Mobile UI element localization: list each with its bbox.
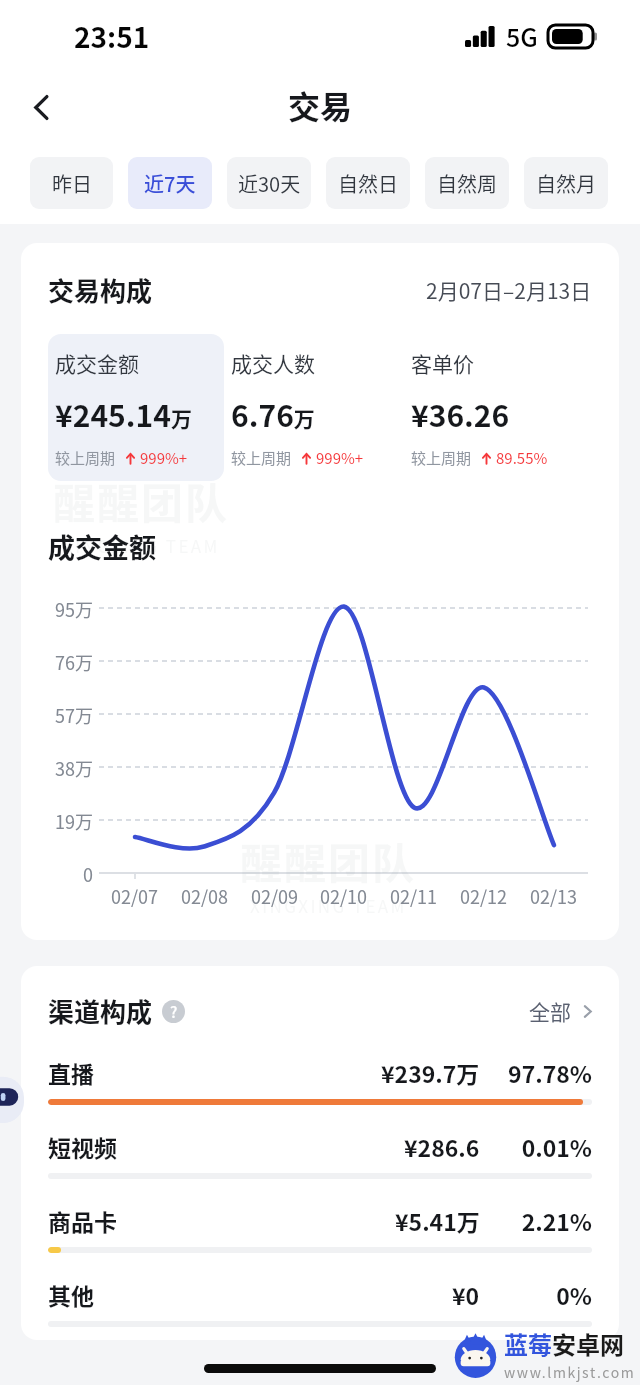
staticText: 交易	[288, 82, 353, 128]
staticText: 6.76万	[231, 392, 315, 435]
staticText: 客单价	[411, 348, 474, 378]
staticText: www.lmkjst.com	[504, 1362, 636, 1382]
button[interactable]: 近30天	[227, 157, 311, 209]
staticText: 蓝莓	[504, 1326, 552, 1361]
staticText: 02/09	[251, 883, 299, 909]
staticText: 成交金额	[55, 348, 139, 378]
staticText: 醒醒团队	[53, 470, 230, 531]
staticText: 97.78%	[496, 1056, 592, 1088]
button[interactable]: 自然月	[524, 157, 608, 209]
staticText: 57万	[21, 702, 93, 728]
staticText: 0	[21, 861, 93, 887]
staticText: ¥0	[452, 1278, 480, 1310]
staticText: 成交人数	[231, 348, 315, 378]
staticText: 95万	[21, 596, 93, 622]
button[interactable]: 其他	[21, 1278, 619, 1340]
staticText: 02/12	[460, 883, 508, 909]
staticText: 999%+	[140, 447, 188, 469]
button[interactable]: 近7天	[128, 157, 212, 209]
staticText: 较上周期	[411, 447, 472, 469]
staticText: 昨日	[52, 169, 92, 198]
staticText: 安卓网	[552, 1326, 624, 1361]
button[interactable]: 客单价	[404, 334, 598, 481]
staticText: 醒醒团队	[240, 830, 417, 891]
staticText: XINGXING TEAM	[250, 893, 407, 918]
staticText: 直播	[48, 1056, 94, 1088]
staticText: 商品卡	[48, 1204, 117, 1236]
staticText: 其他	[48, 1278, 94, 1310]
staticText: 自然周	[437, 169, 497, 198]
staticText: 2.21%	[496, 1204, 592, 1236]
staticText: 近30天	[238, 169, 301, 198]
staticText: 0.01%	[496, 1130, 592, 1162]
staticText: 02/10	[320, 883, 368, 909]
staticText: 02/11	[390, 883, 438, 909]
staticText: 成交金额	[48, 527, 156, 566]
button[interactable]: 短视频	[21, 1130, 619, 1204]
button[interactable]: 全部	[529, 996, 595, 1026]
staticText: 19万	[21, 808, 93, 834]
staticText: 23:51	[74, 16, 150, 57]
staticText: 全部	[529, 996, 571, 1026]
button[interactable]: 自然周	[425, 157, 509, 209]
staticText: 自然月	[536, 169, 596, 198]
staticText: ?	[170, 1001, 178, 1023]
button[interactable]: Back	[15, 81, 67, 133]
staticText: ¥239.7万	[381, 1056, 480, 1088]
staticText: 较上周期	[231, 447, 292, 469]
staticText: 渠道构成	[48, 992, 153, 1030]
button[interactable]: 成交人数	[224, 334, 404, 481]
button[interactable]: 自然日	[326, 157, 410, 209]
staticText: 短视频	[48, 1130, 117, 1162]
staticText: XINGXING TEAM	[63, 533, 220, 558]
button[interactable]: Help	[162, 1000, 185, 1023]
button[interactable]: 昨日	[30, 157, 113, 209]
staticText: 近7天	[144, 169, 196, 198]
staticText: ¥245.14万	[55, 392, 192, 435]
staticText: 较上周期	[55, 447, 116, 469]
staticText: 02/08	[181, 883, 229, 909]
staticText: 38万	[21, 755, 93, 781]
staticText: ¥286.6	[404, 1130, 480, 1162]
staticText: 999%+	[316, 447, 364, 469]
staticText: ¥5.41万	[395, 1204, 480, 1236]
staticText: ¥36.26	[411, 392, 510, 435]
staticText: 0%	[496, 1278, 592, 1310]
button[interactable]: 商品卡	[21, 1204, 619, 1278]
staticText: 89.55%	[496, 447, 548, 469]
staticText: 02/07	[111, 883, 159, 909]
button[interactable]: 直播	[21, 1056, 619, 1130]
staticText: 自然日	[338, 169, 398, 198]
staticText: 交易构成	[48, 271, 153, 309]
staticText: 2月07日–2月13日	[426, 275, 592, 305]
staticText: 5G	[506, 18, 538, 54]
staticText: 02/13	[530, 883, 578, 909]
button[interactable]: 成交金额	[48, 334, 224, 481]
staticText: 76万	[21, 649, 93, 675]
